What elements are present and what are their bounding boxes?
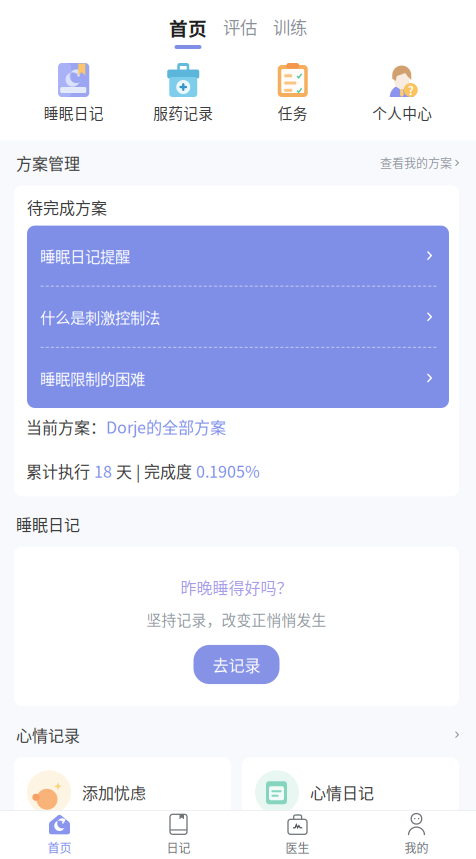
staticText: 当前方案： bbox=[26, 415, 106, 438]
staticText: 个人中心 bbox=[372, 102, 432, 123]
staticText: 0.1905% bbox=[196, 459, 260, 482]
staticText: 心情日记 bbox=[310, 781, 374, 804]
button[interactable]: 去记录 bbox=[193, 645, 279, 684]
staticText: 日记 bbox=[166, 839, 190, 856]
button[interactable]: 心情日记 bbox=[242, 757, 459, 827]
staticText: 坚持记录，改变正悄悄发生 bbox=[146, 609, 326, 630]
staticText: 睡眠日记 bbox=[16, 512, 80, 535]
button[interactable]: 首页 bbox=[0, 814, 119, 856]
staticText: 睡眠日记提醒 bbox=[40, 244, 130, 267]
staticText: 心情记录 bbox=[16, 723, 80, 746]
button[interactable]: 任务 bbox=[238, 63, 347, 123]
staticText: 方案管理 bbox=[16, 151, 80, 174]
staticText: 查看我的方案 bbox=[380, 154, 452, 172]
staticText: 睡眠限制的困难 bbox=[40, 367, 145, 389]
staticText: 训练 bbox=[273, 14, 307, 39]
button[interactable]: 我的 bbox=[357, 814, 476, 856]
staticText: 什么是刺激控制法 bbox=[40, 306, 160, 328]
button[interactable]: 睡眠日记 bbox=[19, 63, 128, 123]
button[interactable]: 日记 bbox=[119, 814, 238, 856]
button[interactable]: 睡眠日记提醒 bbox=[27, 226, 449, 286]
staticText: 去记录 bbox=[212, 653, 260, 676]
staticText: 累计执行 bbox=[26, 459, 94, 482]
staticText: 服药记录 bbox=[153, 102, 213, 123]
staticText: 昨晚睡得好吗？ bbox=[180, 575, 292, 599]
button[interactable]: 睡眠限制的困难 bbox=[27, 348, 449, 408]
button[interactable]: 训练 bbox=[273, 14, 307, 39]
staticText: 天 | 完成度 bbox=[112, 459, 196, 482]
staticText: Dorje的全部方案 bbox=[106, 415, 226, 438]
staticText: 首页 bbox=[169, 14, 207, 41]
staticText: 首页 bbox=[47, 839, 71, 856]
staticText: 我的 bbox=[404, 839, 428, 856]
button[interactable]: 评估 bbox=[223, 14, 257, 39]
staticText: ? bbox=[408, 81, 414, 99]
staticText: 睡眠日记 bbox=[44, 102, 104, 123]
staticText: 待完成方案 bbox=[27, 195, 107, 219]
staticText: 任务 bbox=[278, 102, 308, 123]
button[interactable]: 添加忧虑 bbox=[14, 757, 231, 827]
button[interactable]: 首页 bbox=[169, 14, 207, 49]
button[interactable]: 服药记录 bbox=[128, 63, 238, 123]
button[interactable]: 什么是刺激控制法 bbox=[27, 287, 449, 347]
staticText: 18 bbox=[94, 459, 112, 482]
button[interactable]: 查看我的方案 bbox=[380, 154, 459, 172]
staticText: 评估 bbox=[223, 14, 257, 39]
button[interactable]: ? bbox=[347, 63, 457, 123]
button[interactable]: 心情记录 bbox=[0, 706, 476, 757]
button[interactable]: 医生 bbox=[238, 814, 357, 856]
staticText: 医生 bbox=[285, 839, 309, 856]
staticText: 添加忧虑 bbox=[82, 781, 146, 804]
